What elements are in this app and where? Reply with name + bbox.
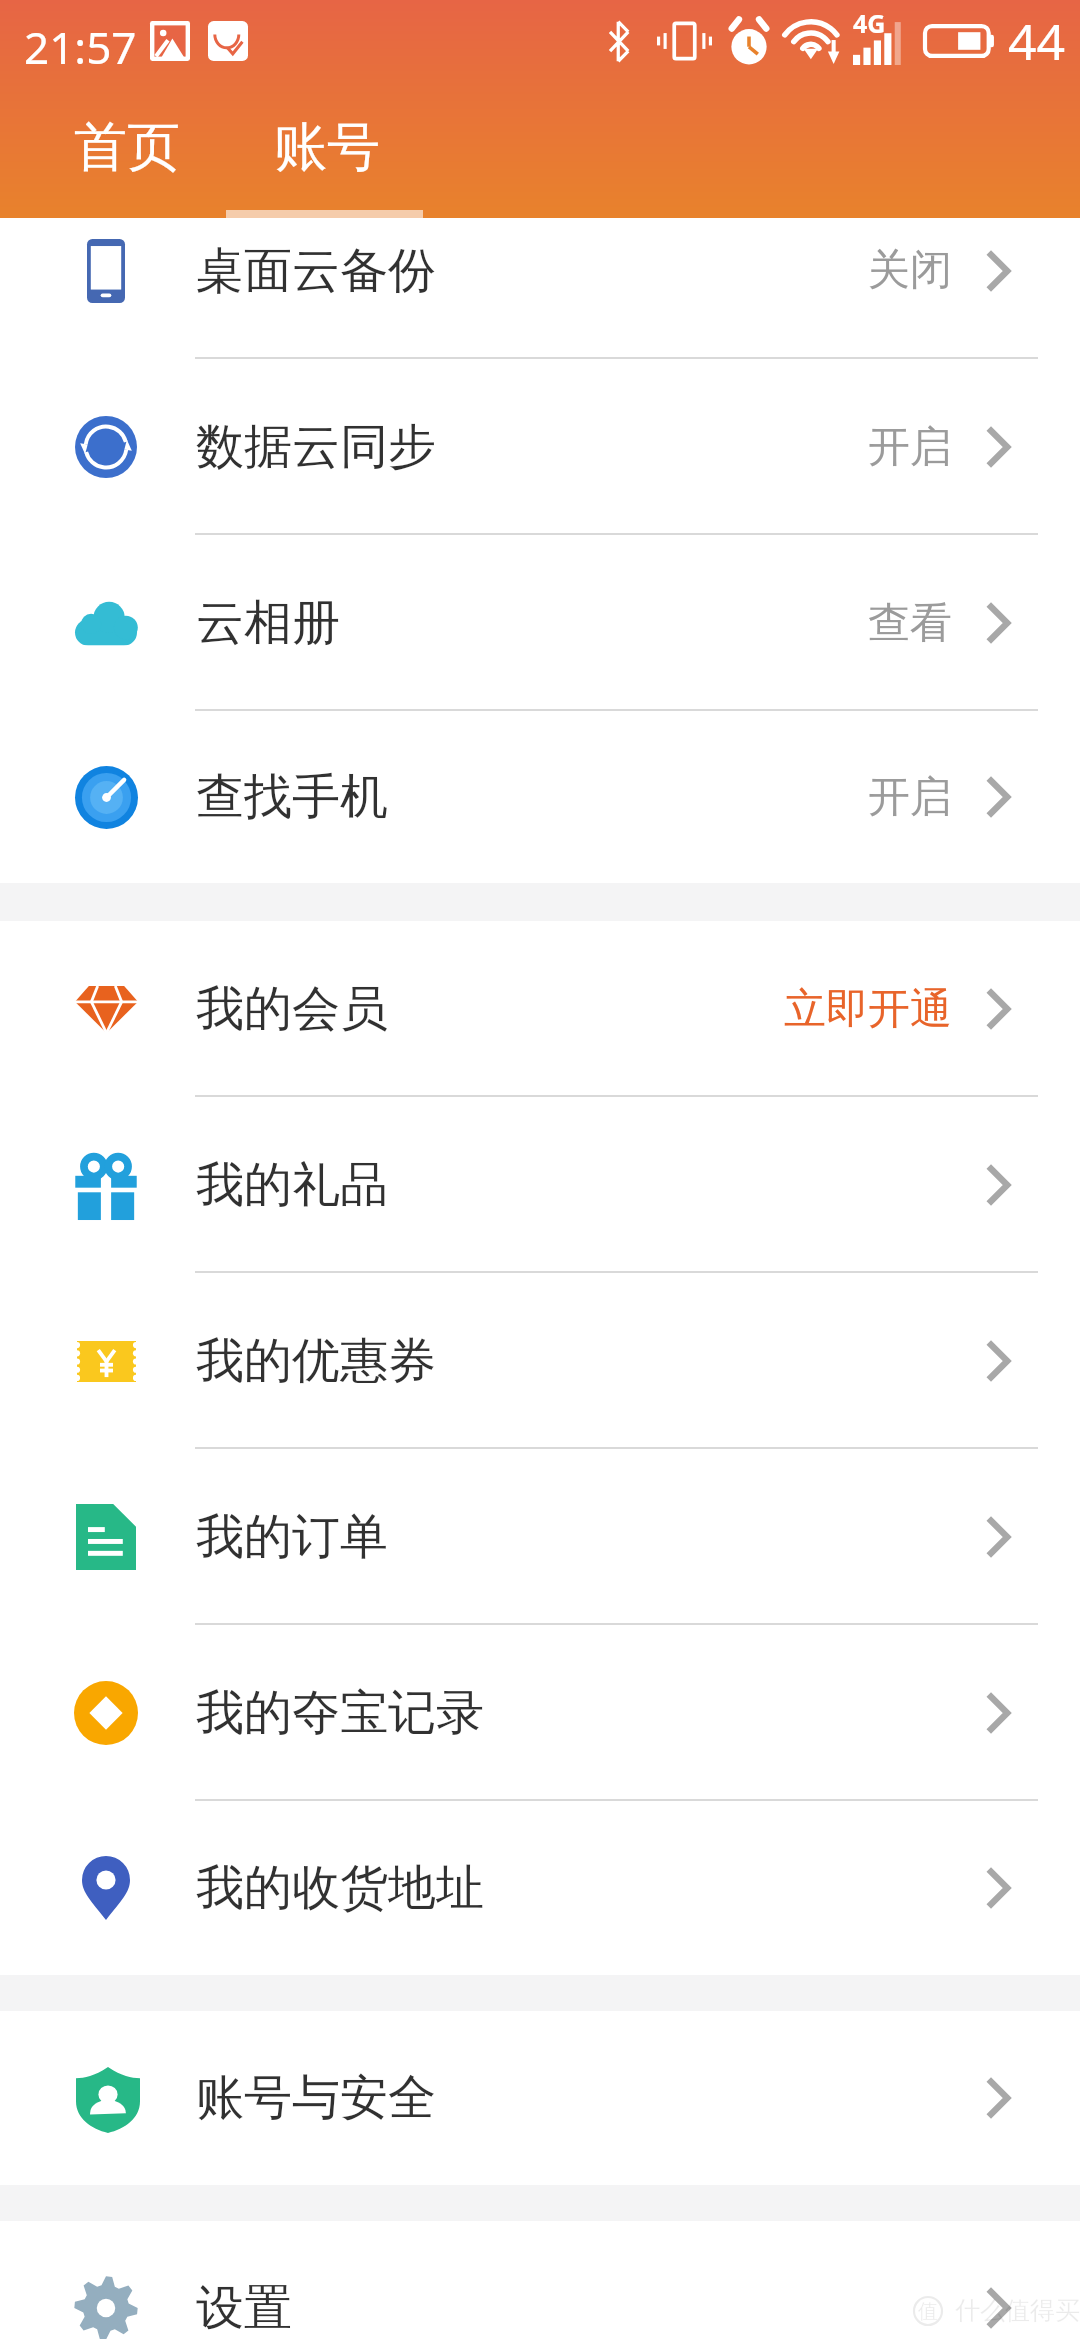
button[interactable]: 数据云同步 [0, 359, 1080, 535]
staticText: 查看 [868, 597, 952, 650]
staticText: 查找手机 [196, 767, 388, 827]
button[interactable]: 我的订单 [0, 1449, 1080, 1625]
staticText: 账号与安全 [196, 2068, 436, 2128]
staticText: 首页 [74, 114, 180, 181]
staticText: 值 [918, 2299, 938, 2324]
staticText: 我的收货地址 [196, 1858, 484, 1918]
staticText: 数据云同步 [196, 417, 436, 477]
button[interactable]: 我的优惠券 [0, 1273, 1080, 1449]
staticText: 我的优惠券 [196, 1331, 436, 1391]
staticText: 我的订单 [196, 1507, 388, 1567]
staticText: 我的礼品 [196, 1155, 388, 1215]
staticText: 4G [853, 6, 886, 40]
staticText: 关闭 [868, 244, 952, 297]
staticText: 开启 [868, 421, 952, 474]
button[interactable]: 账号与安全 [0, 2011, 1080, 2185]
staticText: 账号 [274, 114, 380, 181]
staticText: 设置 [196, 2278, 292, 2338]
button[interactable]: 我的礼品 [0, 1097, 1080, 1273]
button[interactable]: 桌面云备份 [0, 218, 1080, 359]
staticText: 我的夺宝记录 [196, 1683, 484, 1743]
button[interactable]: 查找手机 [0, 711, 1080, 883]
staticText: 开启 [868, 771, 952, 824]
staticText: 44 [1008, 7, 1066, 75]
button[interactable]: 账号 [226, 104, 423, 218]
button[interactable]: 云相册 [0, 535, 1080, 711]
button[interactable]: 我的夺宝记录 [0, 1625, 1080, 1801]
button[interactable]: 我的会员 [0, 921, 1080, 1097]
staticText: 云相册 [196, 593, 340, 653]
staticText: 桌面云备份 [196, 241, 436, 301]
staticText: 立即开通 [784, 983, 952, 1036]
staticText: 21:57 [24, 17, 137, 77]
button[interactable]: 我的收货地址 [0, 1801, 1080, 1975]
button[interactable]: 首页 [0, 104, 226, 218]
staticText: 我的会员 [196, 979, 388, 1039]
button[interactable]: 设置 [0, 2221, 1080, 2339]
staticText: 什么值得买 [955, 2295, 1080, 2326]
